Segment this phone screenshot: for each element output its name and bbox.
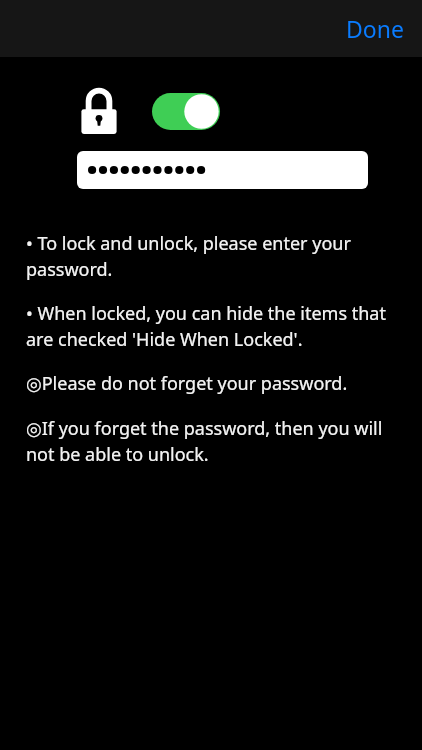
staticText: • When locked, you can hide the items th… xyxy=(26,301,404,351)
staticText: ◎If you forget the password, then you wi… xyxy=(26,416,404,466)
staticText: • To lock and unlock, please enter your … xyxy=(26,231,404,281)
button[interactable]: Lock xyxy=(78,87,120,135)
button[interactable]: Lock toggle, on xyxy=(152,93,220,130)
button[interactable]: Done xyxy=(328,5,422,52)
staticText: Done xyxy=(346,13,404,44)
button[interactable]: Password field xyxy=(77,151,368,189)
staticText: ◎Please do not forget your password. xyxy=(26,371,348,396)
